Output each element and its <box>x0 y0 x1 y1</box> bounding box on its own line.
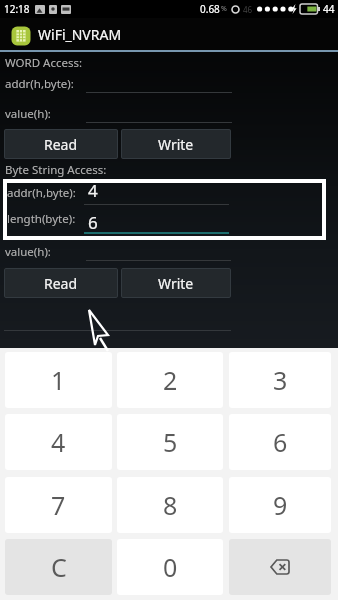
button[interactable]: Read <box>4 129 118 159</box>
staticText: 0.68 <box>200 2 220 16</box>
staticText: Write <box>158 135 194 154</box>
button[interactable]: 8 <box>117 477 223 533</box>
button[interactable]: C <box>5 539 112 595</box>
button[interactable]: 6 <box>229 414 331 470</box>
staticText: 5 <box>163 425 178 459</box>
staticText: 3 <box>273 363 288 397</box>
button[interactable]: 4 <box>5 414 112 470</box>
button[interactable]: 5 <box>117 414 223 470</box>
staticText: 2 <box>163 363 178 397</box>
staticText: 6 <box>273 425 288 459</box>
button[interactable]: 0 <box>117 539 223 595</box>
button[interactable]: Read <box>4 268 118 298</box>
button[interactable]: 9 <box>229 477 331 533</box>
staticText: WiFi_NVRAM <box>38 25 122 44</box>
button[interactable]: 2 <box>117 352 223 408</box>
button[interactable]: Write <box>121 129 231 159</box>
staticText: 4 <box>88 179 98 202</box>
staticText: 7 <box>51 488 66 522</box>
staticText: value(h): <box>5 106 51 122</box>
staticText: value(h): <box>5 244 51 260</box>
staticText: C <box>51 550 67 584</box>
staticText: % <box>221 4 227 14</box>
button[interactable]: 1 <box>5 352 112 408</box>
staticText: 1 <box>51 363 66 397</box>
button[interactable]: Backspace <box>229 539 331 595</box>
button[interactable]: WiFi_NVRAM <box>0 18 338 50</box>
staticText: WORD Access: <box>5 55 83 71</box>
staticText: Byte String Access: <box>5 162 107 178</box>
button[interactable]: Write <box>121 268 231 298</box>
staticText: 4 <box>51 425 66 459</box>
staticText: 6 <box>88 211 98 234</box>
staticText: 9 <box>273 488 288 522</box>
staticText: addr(h,byte): <box>7 185 76 201</box>
staticText: 0 <box>163 550 178 584</box>
staticText: 44 <box>323 2 335 16</box>
staticText: addr(h,byte): <box>5 76 74 92</box>
button[interactable]: 7 <box>5 477 112 533</box>
staticText: 12:18 <box>4 2 30 16</box>
staticText: Read <box>44 274 78 293</box>
staticText: Read <box>44 135 78 154</box>
staticText: length(byte): <box>7 211 76 227</box>
staticText: 46 <box>243 4 253 15</box>
staticText: Write <box>158 274 194 293</box>
staticText: 8 <box>163 488 178 522</box>
button[interactable]: 3 <box>229 352 331 408</box>
